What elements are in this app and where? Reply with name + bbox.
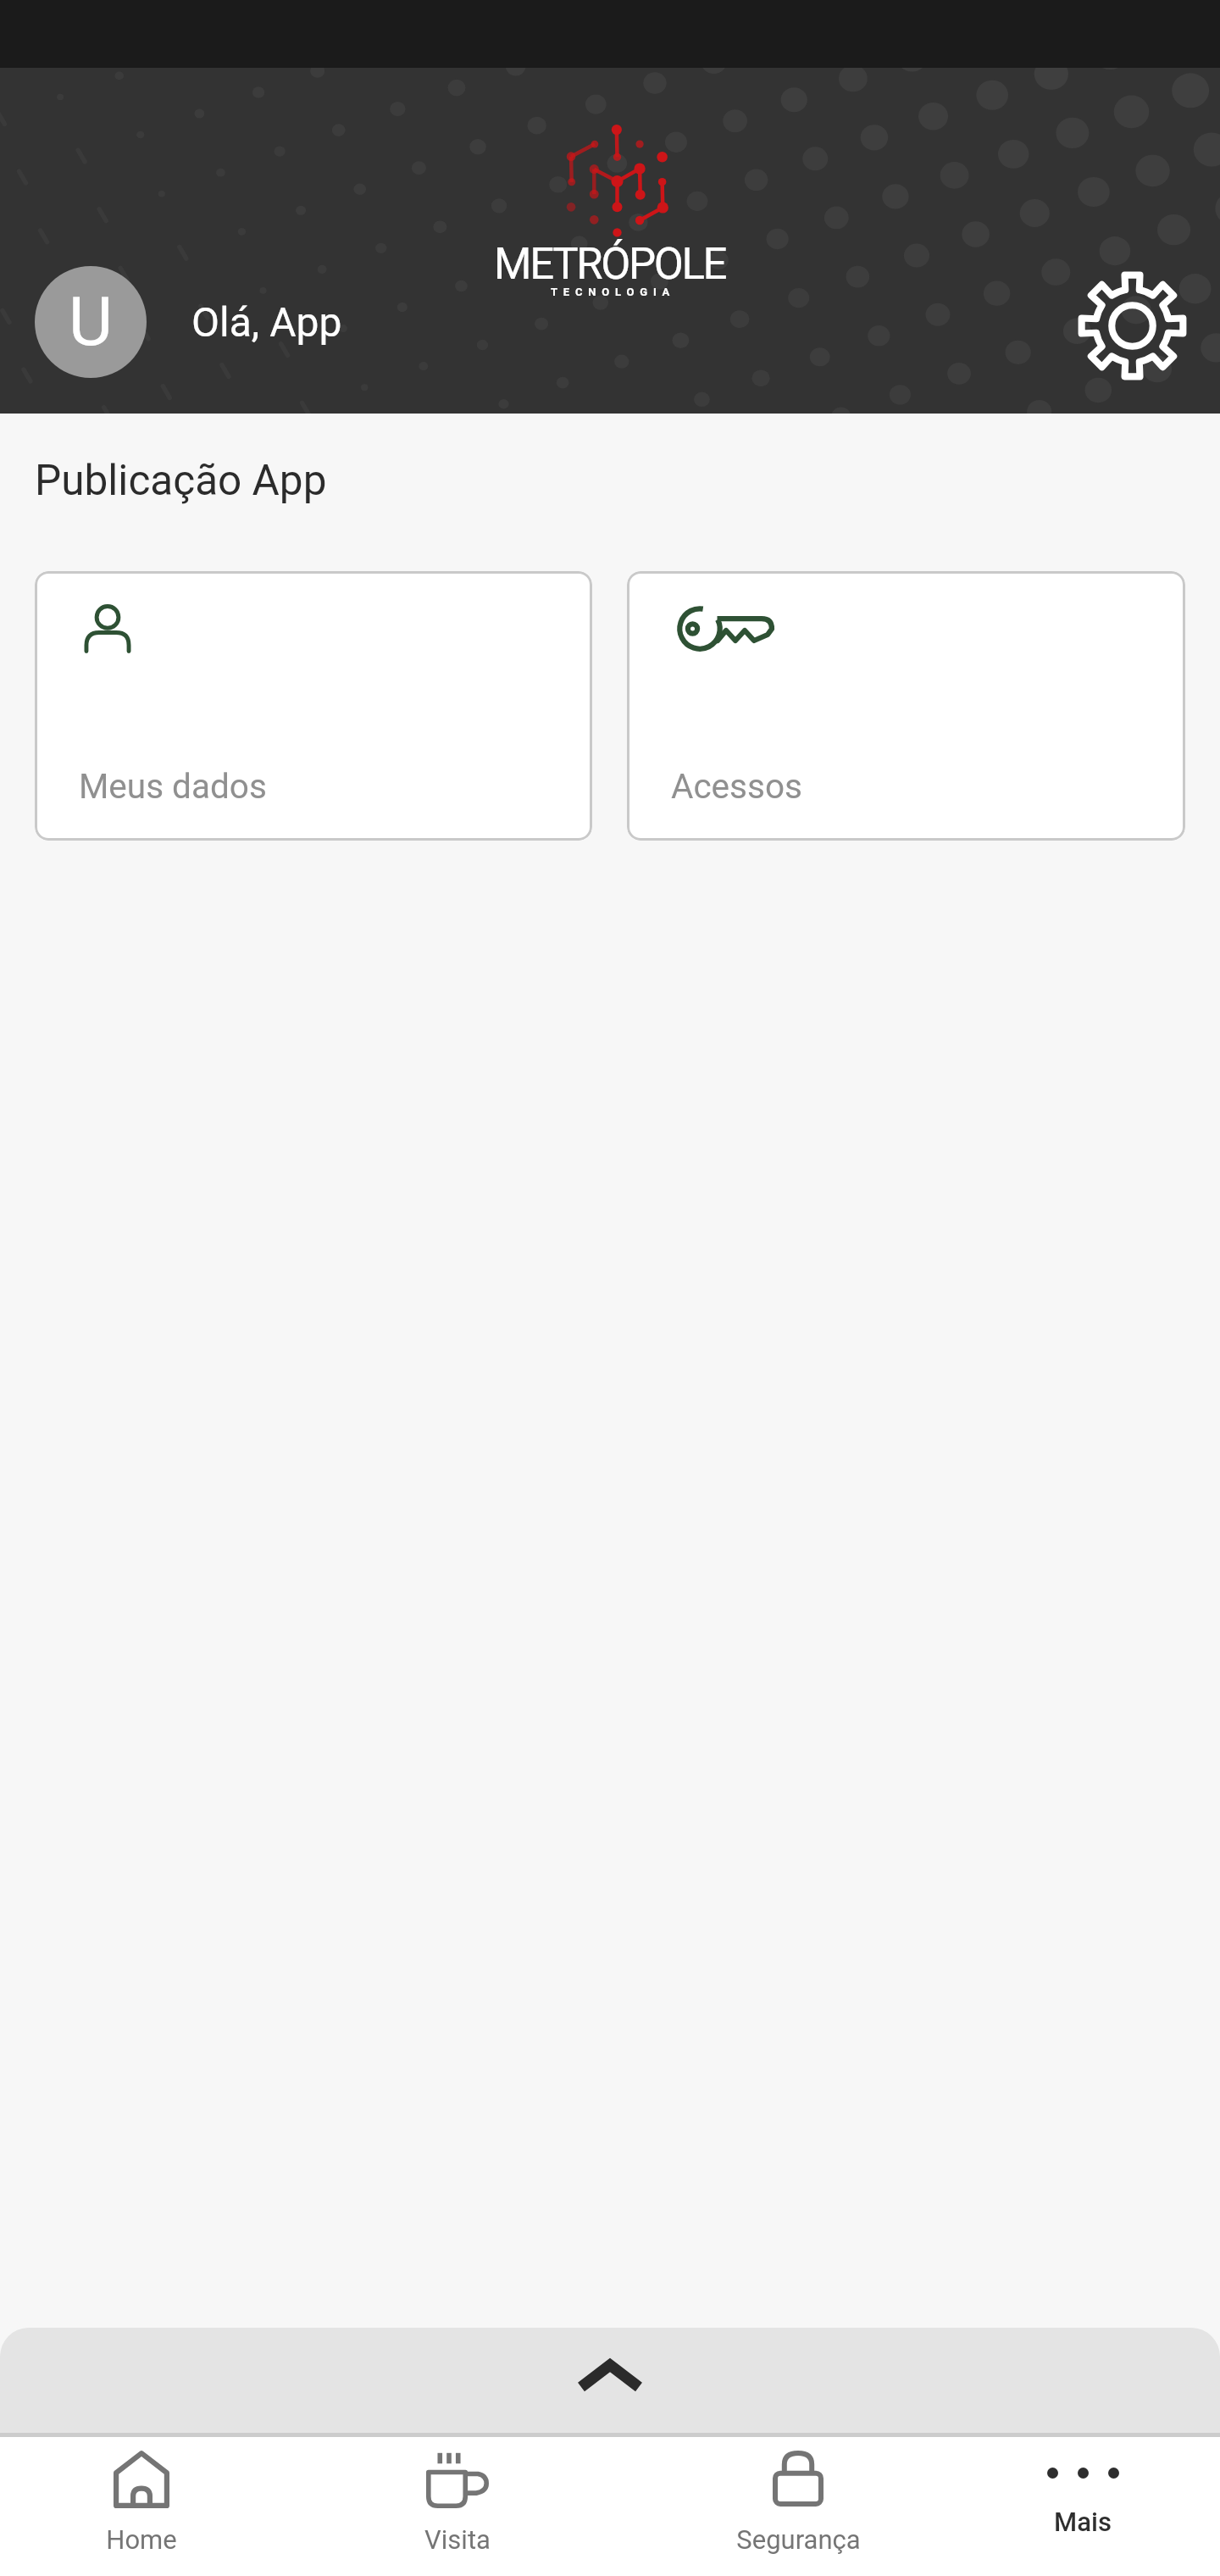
button[interactable]: Meus dados [35,571,592,841]
staticText: Mais [1054,2507,1112,2537]
staticText: U [69,282,113,362]
button[interactable]: Expandir [0,2328,1220,2433]
staticText: Home [106,2524,177,2555]
button[interactable]: Configurações [1073,266,1191,385]
button[interactable]: U [35,266,342,378]
staticText: Meus dados [79,766,267,806]
button[interactable]: Acessos [627,571,1185,841]
staticText: Segurança [736,2524,861,2555]
button[interactable]: Mais [947,2437,1218,2576]
button[interactable]: Home [6,2437,277,2576]
staticText: METRÓPOLE [494,239,726,290]
staticText: TECNOLOGIA [551,286,676,298]
staticText: Acessos [671,766,802,806]
staticText: Visita [424,2524,491,2555]
button[interactable]: Segurança [663,2437,934,2576]
staticText: Olá, App [191,298,342,346]
staticText: Publicação App [35,456,327,505]
button[interactable]: Visita [322,2437,593,2576]
